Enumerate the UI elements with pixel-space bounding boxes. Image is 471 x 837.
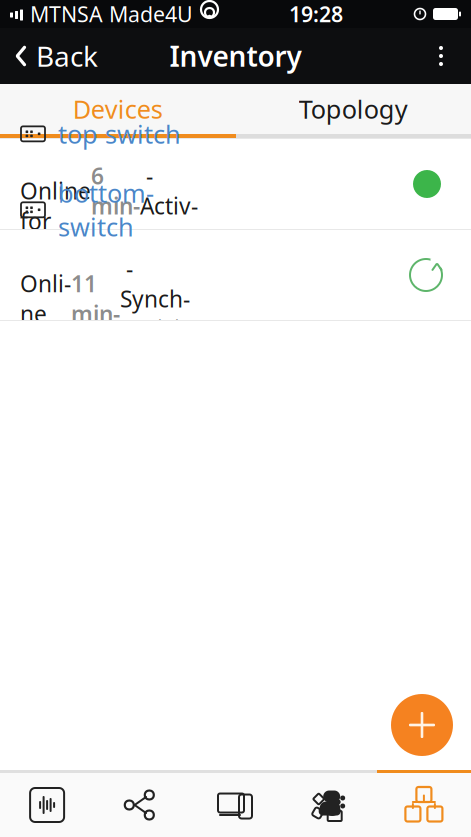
button[interactable]: Monitoring: [0, 773, 94, 837]
staticText: top switch: [58, 117, 181, 151]
staticText: - Synchronizing: [120, 253, 190, 374]
staticText: 11 minutes: [71, 268, 120, 359]
button[interactable]: bottom-switch: [0, 230, 471, 320]
staticText: MTNSA Made4U: [30, 0, 193, 28]
button[interactable]: Services: [283, 773, 377, 837]
button[interactable]: Back: [0, 28, 110, 84]
button[interactable]: Topology: [235, 84, 471, 134]
button[interactable]: Inventory: [377, 773, 471, 837]
staticText: Online for: [20, 268, 71, 359]
button[interactable]: Devices: [188, 773, 283, 837]
staticText: - Active: [140, 161, 198, 251]
staticText: Online for: [20, 176, 91, 236]
button[interactable]: Devices: [0, 84, 235, 134]
staticText: bottom-switch: [58, 176, 154, 243]
staticText: 6 minutes: [91, 161, 140, 251]
staticText: Devices: [73, 92, 163, 126]
button[interactable]: Add device: [391, 694, 453, 756]
button[interactable]: top switch: [0, 139, 471, 229]
staticText: 19:28: [289, 0, 343, 28]
staticText: Inventory: [169, 37, 301, 75]
staticText: Topology: [299, 92, 408, 126]
staticText: Back: [36, 37, 98, 75]
button[interactable]: More options: [419, 28, 463, 84]
button[interactable]: Network: [94, 773, 188, 837]
